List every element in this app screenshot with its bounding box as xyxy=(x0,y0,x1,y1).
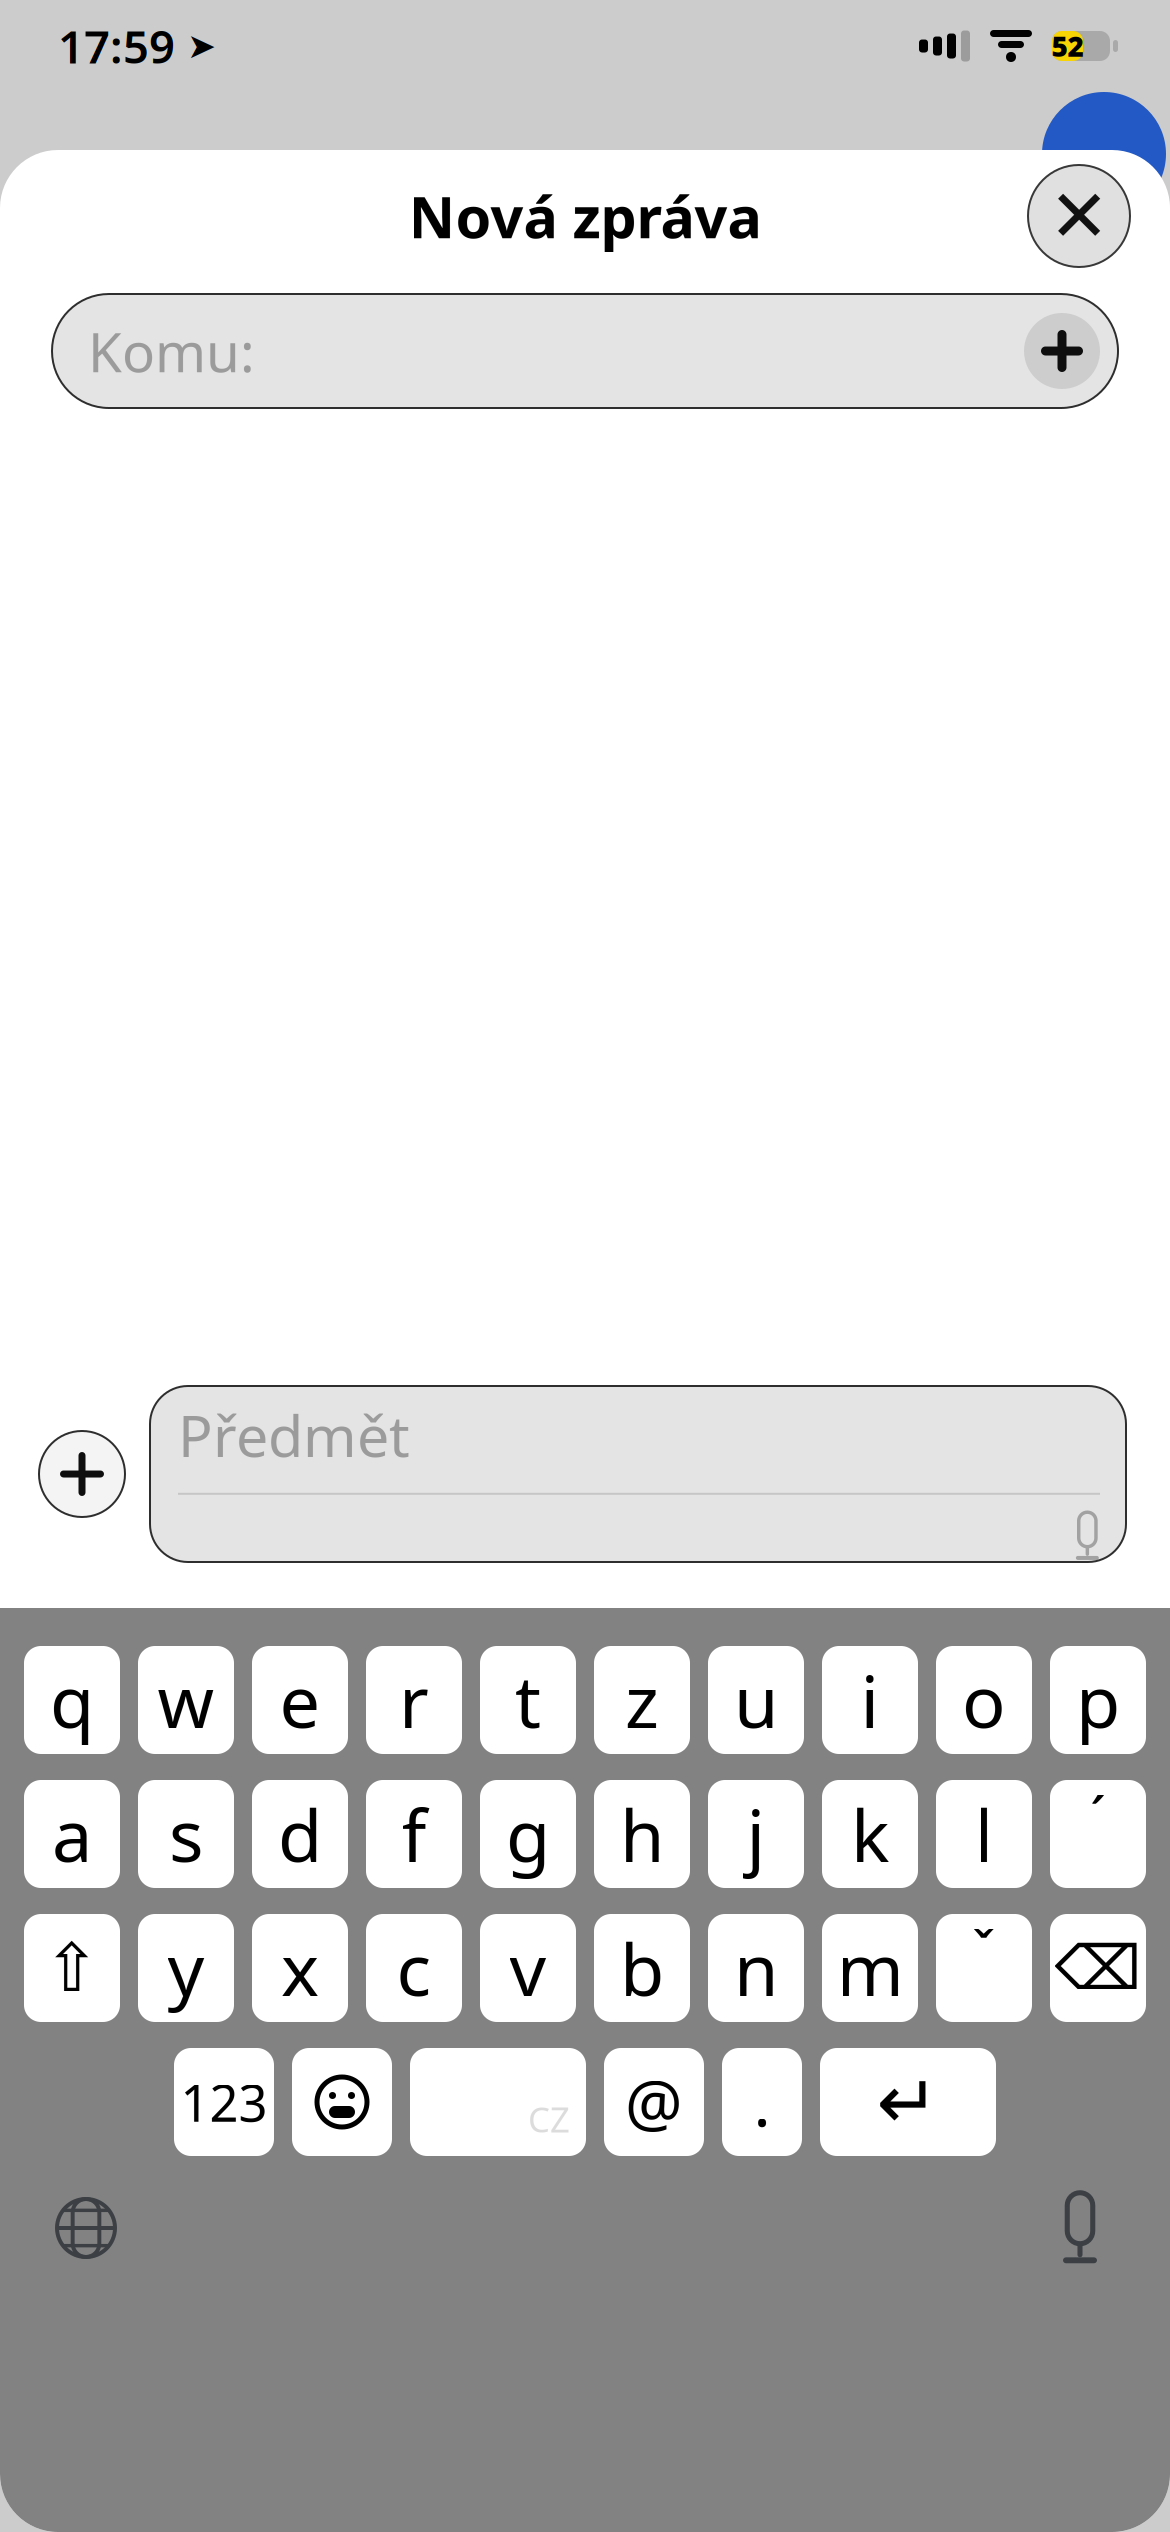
staticText: CZ xyxy=(528,2096,570,2142)
staticText: Komu: xyxy=(88,315,255,387)
staticText: ➤ xyxy=(187,26,216,66)
button[interactable]: q xyxy=(24,1646,120,1754)
staticText: e xyxy=(279,1652,320,1748)
button[interactable]: Předmět, subject xyxy=(150,1386,1126,1562)
staticText: s xyxy=(169,1786,203,1882)
staticText: p xyxy=(1076,1652,1120,1748)
staticText: . xyxy=(753,2059,770,2144)
button[interactable]: a xyxy=(24,1780,120,1888)
button[interactable]: y xyxy=(138,1914,234,2022)
button[interactable]: j xyxy=(708,1780,804,1888)
staticText: ⌫ xyxy=(1054,1933,1141,2003)
button[interactable]: Komu, recipients xyxy=(52,294,1118,408)
button[interactable]: Close xyxy=(1026,163,1132,269)
button[interactable]: d xyxy=(252,1780,348,1888)
staticText: k xyxy=(851,1786,889,1882)
button[interactable]: r xyxy=(366,1646,462,1754)
button[interactable]: t xyxy=(480,1646,576,1754)
staticText: Nová zpráva xyxy=(408,178,761,254)
staticText: d xyxy=(278,1786,322,1882)
staticText: t xyxy=(515,1652,541,1748)
button[interactable]: At sign xyxy=(604,2048,704,2156)
button[interactable]: s xyxy=(138,1780,234,1888)
button[interactable]: n xyxy=(708,1914,804,2022)
button[interactable]: p xyxy=(1050,1646,1146,1754)
button[interactable]: v xyxy=(480,1914,576,2022)
staticText: q xyxy=(50,1652,94,1748)
staticText: j xyxy=(746,1786,765,1882)
staticText: c xyxy=(396,1920,431,2016)
button[interactable]: i xyxy=(822,1646,918,1754)
button[interactable]: l xyxy=(936,1780,1032,1888)
button[interactable]: Dictation xyxy=(1024,2176,1136,2280)
staticText: a xyxy=(52,1786,92,1882)
button[interactable]: f xyxy=(366,1780,462,1888)
staticText: 123 xyxy=(180,2068,267,2136)
button[interactable]: w xyxy=(138,1646,234,1754)
staticText: i xyxy=(860,1652,879,1748)
button[interactable]: Delete xyxy=(1050,1914,1146,2022)
button[interactable]: Numbers xyxy=(174,2048,274,2156)
button[interactable]: g xyxy=(480,1780,576,1888)
staticText: ✕ xyxy=(1049,175,1109,257)
staticText: 17:59 xyxy=(58,16,175,76)
button[interactable]: Emoji xyxy=(292,2048,392,2156)
staticText: m xyxy=(836,1920,903,2016)
staticText: f xyxy=(401,1786,426,1882)
button[interactable]: Next keyboard xyxy=(30,2176,142,2280)
staticText: x xyxy=(281,1920,319,2016)
staticText: z xyxy=(625,1652,659,1748)
button[interactable]: Period xyxy=(722,2048,802,2156)
staticText: 52 xyxy=(1051,27,1083,65)
button[interactable]: m xyxy=(822,1914,918,2022)
button[interactable]: b xyxy=(594,1914,690,2022)
button[interactable]: e xyxy=(252,1646,348,1754)
staticText: h xyxy=(620,1786,664,1882)
staticText: ˇ xyxy=(971,1912,996,1990)
staticText: ↵ xyxy=(876,2060,939,2144)
staticText: ´ xyxy=(1090,1778,1106,1856)
staticText: v xyxy=(509,1920,546,2016)
button[interactable]: ´ xyxy=(1050,1780,1146,1888)
button[interactable]: ˇ xyxy=(936,1914,1032,2022)
staticText: g xyxy=(506,1786,550,1882)
staticText: n xyxy=(734,1920,778,2016)
staticText: y xyxy=(167,1920,204,2016)
staticText: r xyxy=(399,1652,429,1748)
staticText: b xyxy=(620,1920,664,2016)
staticText: w xyxy=(157,1652,214,1748)
staticText: l xyxy=(974,1786,993,1882)
staticText: ⇧ xyxy=(44,1930,100,2006)
button[interactable]: o xyxy=(936,1646,1032,1754)
button[interactable]: u xyxy=(708,1646,804,1754)
button[interactable]: Add attachment xyxy=(38,1430,126,1518)
button[interactable]: z xyxy=(594,1646,690,1754)
staticText: u xyxy=(734,1652,778,1748)
button[interactable]: c xyxy=(366,1914,462,2022)
button[interactable]: k xyxy=(822,1780,918,1888)
button[interactable]: x xyxy=(252,1914,348,2022)
staticText: Předmět xyxy=(178,1397,410,1473)
button[interactable]: Return xyxy=(820,2048,996,2156)
button[interactable]: Space xyxy=(410,2048,586,2156)
button[interactable]: h xyxy=(594,1780,690,1888)
staticText: o xyxy=(962,1652,1006,1748)
button[interactable]: Shift xyxy=(24,1914,120,2022)
staticText: @ xyxy=(625,2059,683,2144)
